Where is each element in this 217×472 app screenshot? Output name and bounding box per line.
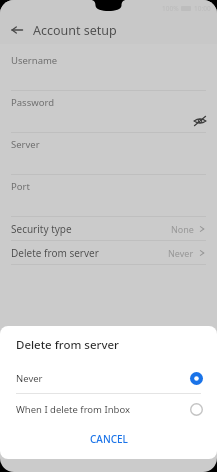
button[interactable]: Port — [0, 175, 217, 217]
button[interactable]: Delete from server — [0, 241, 217, 265]
button[interactable]: Username — [0, 49, 217, 91]
staticText: Delete from server — [16, 337, 119, 353]
staticText: Never — [16, 372, 43, 385]
button[interactable]: Password — [0, 91, 217, 133]
button[interactable]: Show password — [191, 112, 209, 130]
button[interactable]: CANCEL — [78, 428, 140, 450]
staticText: Account setup — [33, 22, 117, 39]
button[interactable]: Never — [0, 363, 217, 393]
staticText: CANCEL — [90, 432, 128, 446]
staticText: Port — [11, 180, 30, 193]
staticText: 100% — [162, 4, 179, 13]
button[interactable]: When I delete from Inbox — [0, 394, 217, 424]
staticText: When I delete from Inbox — [16, 403, 130, 416]
staticText: None — [171, 223, 194, 235]
staticText: 10:00 — [194, 4, 211, 13]
staticText: Never — [168, 247, 194, 259]
staticText: Server — [11, 138, 40, 151]
staticText: Security type — [11, 222, 72, 236]
button[interactable]: Security type — [0, 217, 217, 241]
staticText: Username — [11, 54, 58, 67]
staticText: Password — [11, 96, 54, 109]
button[interactable]: Server — [0, 133, 217, 175]
button[interactable]: Back — [6, 19, 28, 41]
staticText: Delete from server — [11, 246, 99, 260]
